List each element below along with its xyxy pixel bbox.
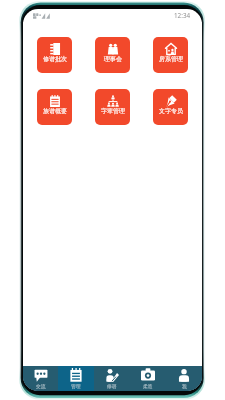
button[interactable]: 族谱概要 bbox=[37, 89, 72, 125]
staticText: 房系管理 bbox=[159, 55, 183, 63]
button[interactable]: 管理 bbox=[58, 366, 94, 391]
staticText: 文字专员 bbox=[159, 107, 183, 115]
staticText: 管理 bbox=[71, 383, 81, 389]
staticText: 修谱批次 bbox=[43, 55, 67, 63]
staticText: 我 bbox=[182, 383, 187, 389]
button[interactable]: 修谱批次 bbox=[37, 37, 72, 73]
button[interactable]: 修谱 bbox=[94, 366, 130, 391]
button[interactable]: 字辈管理 bbox=[95, 89, 130, 125]
staticText: 交流 bbox=[36, 383, 46, 389]
button[interactable]: 文字专员 bbox=[153, 89, 188, 125]
staticText: 修谱 bbox=[107, 383, 117, 389]
staticText: 理事会 bbox=[104, 55, 122, 63]
button[interactable]: 理事会 bbox=[95, 37, 130, 73]
staticText: 字辈管理 bbox=[101, 107, 125, 115]
staticText: 12:34 bbox=[174, 11, 191, 20]
staticText: 族谱概要 bbox=[43, 107, 67, 115]
staticText: 柔造 bbox=[143, 383, 153, 389]
button[interactable]: 房系管理 bbox=[153, 37, 188, 73]
button[interactable]: 我 bbox=[166, 366, 202, 391]
button[interactable]: 交流 bbox=[23, 366, 58, 391]
button[interactable]: 柔造 bbox=[130, 366, 166, 391]
